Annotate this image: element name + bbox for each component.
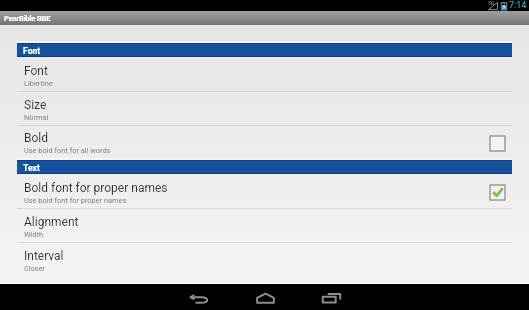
button[interactable]: Text (17, 160, 512, 174)
button[interactable]: Home (232, 284, 298, 310)
button[interactable]: Toggle option (490, 185, 505, 200)
button[interactable]: Bold (0, 126, 529, 158)
staticText: 7:14 (509, 0, 527, 11)
staticText: Interval (24, 249, 64, 263)
staticText: Normal (24, 113, 49, 122)
button[interactable]: Bold font for proper names (0, 174, 529, 209)
staticText: Alignment (24, 215, 79, 229)
staticText: Use bold font for proper names (24, 196, 127, 205)
button[interactable]: Recent apps (298, 284, 364, 310)
staticText: Bold (24, 131, 49, 145)
staticText: Closer (24, 264, 46, 273)
staticText: PearBible BBE (4, 14, 51, 23)
button[interactable]: Interval (0, 243, 529, 277)
staticText: Font (23, 46, 41, 56)
staticText: Font (24, 64, 48, 78)
staticText: Use bold font for all words (24, 146, 111, 155)
button[interactable]: Toggle option (490, 136, 505, 151)
staticText: Text (23, 163, 40, 173)
button[interactable]: Font (17, 43, 512, 57)
staticText: Width (24, 230, 44, 239)
button[interactable]: Back (166, 284, 232, 310)
button[interactable]: Font (0, 57, 529, 92)
staticText: Size (24, 98, 47, 112)
staticText: Bold font for proper names (24, 181, 168, 195)
button[interactable]: Alignment (0, 209, 529, 243)
staticText: 3G (488, 0, 495, 6)
staticText: Libertine (24, 79, 53, 88)
button[interactable]: Size (0, 92, 529, 126)
